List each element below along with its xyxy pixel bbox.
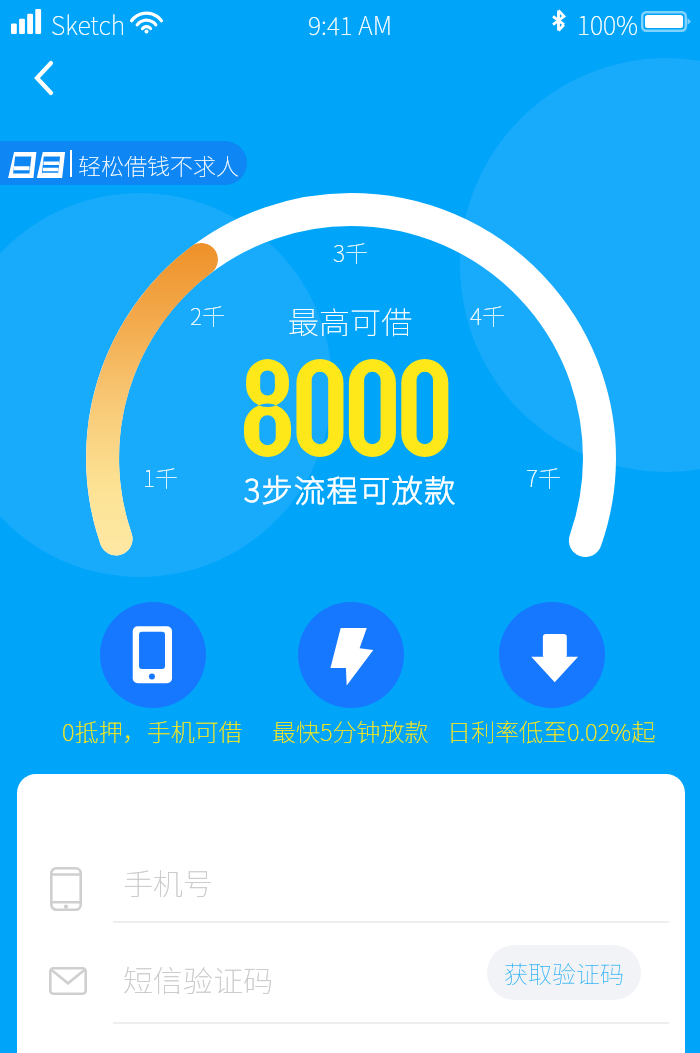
staticText: 100%: [577, 6, 639, 42]
staticText: 9:41 AM: [308, 6, 392, 42]
staticText: 0抵押，手机可借: [62, 713, 243, 748]
staticText: 1千: [143, 460, 178, 493]
staticText: 日利率低至0.02%起: [447, 713, 656, 748]
staticText: 7千: [526, 460, 561, 493]
button[interactable]: 轻松借钱不求人: [0, 141, 247, 185]
button[interactable]: 获取验证码: [487, 945, 641, 1000]
staticText: 4千: [470, 298, 505, 331]
staticText: 3千: [333, 235, 368, 268]
staticText: 手机号: [123, 860, 213, 903]
staticText: Sketch: [51, 6, 126, 42]
staticText: 3步流程可放款: [244, 466, 457, 511]
staticText: 获取验证码: [504, 955, 624, 990]
button[interactable]: 最快5分钟放款: [240, 602, 460, 750]
staticText: 最快5分钟放款: [272, 713, 429, 748]
staticText: 短信验证码: [123, 957, 273, 1000]
staticText: 2千: [190, 298, 225, 331]
button[interactable]: 0抵押，手机可借: [42, 602, 262, 750]
staticText: 最高可借: [288, 298, 412, 343]
button[interactable]: Back: [17, 52, 73, 108]
staticText: 轻松借钱不求人: [78, 148, 239, 181]
button[interactable]: 日利率低至0.02%起: [441, 602, 661, 750]
